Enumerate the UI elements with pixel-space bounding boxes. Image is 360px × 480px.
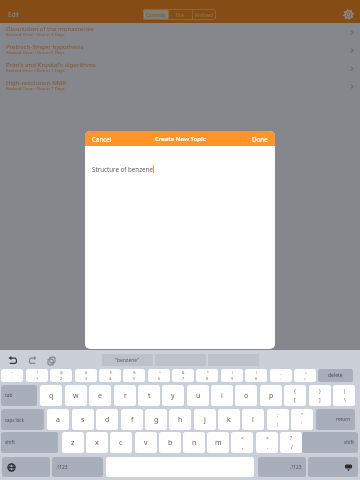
button[interactable]: Cancel (85, 132, 119, 146)
button[interactable]: Paste (45, 352, 59, 365)
staticText: caps lock (5, 417, 24, 423)
staticText: m (215, 438, 222, 448)
button[interactable]: q (40, 385, 62, 406)
button[interactable]: l (242, 409, 264, 430)
staticText: ! (37, 371, 38, 375)
button[interactable]: ^ (148, 369, 170, 382)
button[interactable]: ) (245, 369, 267, 382)
button[interactable]: return (316, 409, 355, 430)
staticText: + (305, 371, 307, 375)
button[interactable]: y (162, 385, 184, 406)
button[interactable]: ? (280, 432, 302, 453)
button[interactable]: Due (169, 9, 192, 20)
staticText: w (73, 391, 79, 401)
staticText: Structure of benzene (92, 165, 153, 173)
button[interactable]: Done (245, 132, 275, 146)
button[interactable]: "benzene" (102, 354, 153, 366)
button[interactable]: b (159, 432, 181, 453)
staticText: q (49, 391, 54, 401)
button[interactable]: delete (318, 369, 353, 382)
button[interactable]: _ (270, 369, 292, 382)
button[interactable]: : (267, 409, 289, 430)
button[interactable]: p (260, 385, 282, 406)
button[interactable]: v (135, 432, 157, 453)
button[interactable]: ! (26, 369, 48, 382)
button[interactable]: } (309, 385, 331, 406)
button[interactable]: @ (50, 369, 72, 382)
staticText: Revised Once • Due in 3 Days (6, 31, 65, 37)
staticText: ^ (159, 371, 161, 375)
button[interactable]: i (211, 385, 233, 406)
button[interactable]: c (110, 432, 132, 453)
staticText: z (71, 438, 75, 448)
button[interactable]: High-resolution NMR (0, 77, 360, 95)
staticText: ? (290, 435, 293, 442)
staticText: k (227, 415, 231, 425)
button[interactable]: Prim's and Kruskal's algorithms (0, 59, 360, 77)
button[interactable]: u (187, 385, 209, 406)
button[interactable]: Switch keyboard (2, 457, 50, 477)
button[interactable]: s (72, 409, 94, 430)
button[interactable]: h (169, 409, 191, 430)
staticText: ) (256, 371, 257, 375)
button[interactable]: tab (1, 385, 37, 406)
button[interactable]: # (75, 369, 97, 382)
staticText: ' (301, 421, 303, 428)
button[interactable]: t (138, 385, 160, 406)
button[interactable]: Hide keyboard (308, 457, 358, 477)
staticText: Prim's and Kruskal's algorithms (6, 60, 96, 68)
button[interactable]: Dissolution of the monasteries (0, 23, 360, 41)
button[interactable]: x (86, 432, 108, 453)
staticText: Done (252, 135, 268, 143)
button[interactable]: k (218, 409, 240, 430)
button[interactable]: % (123, 369, 145, 382)
button[interactable]: m (207, 432, 229, 453)
button[interactable]: | (333, 385, 355, 406)
button[interactable]: w (65, 385, 87, 406)
button[interactable]: g (145, 409, 167, 430)
button[interactable]: r (114, 385, 136, 406)
button[interactable]: caps lock (1, 409, 44, 430)
button[interactable]: $ (99, 369, 121, 382)
button[interactable]: Archived (193, 9, 216, 20)
button[interactable]: & (172, 369, 194, 382)
button[interactable]: Currently (143, 9, 168, 20)
button[interactable]: e (89, 385, 111, 406)
button[interactable]: Edit (2, 8, 26, 20)
button[interactable]: shift (1, 432, 58, 453)
button[interactable]: { (284, 385, 306, 406)
staticText: Edit (8, 10, 20, 18)
button[interactable]: Redo (25, 352, 41, 365)
button[interactable]: j (194, 409, 216, 430)
button[interactable]: shift (302, 432, 358, 453)
staticText: 5 (133, 376, 136, 381)
button[interactable]: Settings (340, 6, 356, 22)
button[interactable]: ~ (1, 369, 23, 382)
button[interactable]: f (121, 409, 143, 430)
button[interactable]: d (96, 409, 118, 430)
staticText: i (221, 391, 223, 401)
button[interactable]: n (183, 432, 205, 453)
button[interactable]: z (62, 432, 84, 453)
staticText: 9 (231, 376, 234, 381)
staticText: p (269, 391, 274, 401)
button[interactable]: o (235, 385, 257, 406)
button[interactable]: a (47, 409, 69, 430)
staticText: | (343, 388, 346, 395)
button[interactable]: " (291, 409, 313, 430)
button[interactable]: * (196, 369, 218, 382)
button[interactable]: .?123 (258, 457, 306, 477)
staticText: 2 (60, 376, 63, 381)
staticText: / (291, 444, 293, 451)
button[interactable]: + (294, 369, 316, 382)
button[interactable]: Prebisch-Singer hypothesis (0, 41, 360, 59)
button[interactable]: ( (221, 369, 243, 382)
button[interactable]: Undo (5, 352, 22, 365)
button[interactable]: > (256, 432, 278, 453)
staticText: Revised Once • Due in 7 Days (6, 67, 65, 73)
button[interactable]: < (231, 432, 253, 453)
button[interactable]: .?123 (52, 457, 103, 477)
